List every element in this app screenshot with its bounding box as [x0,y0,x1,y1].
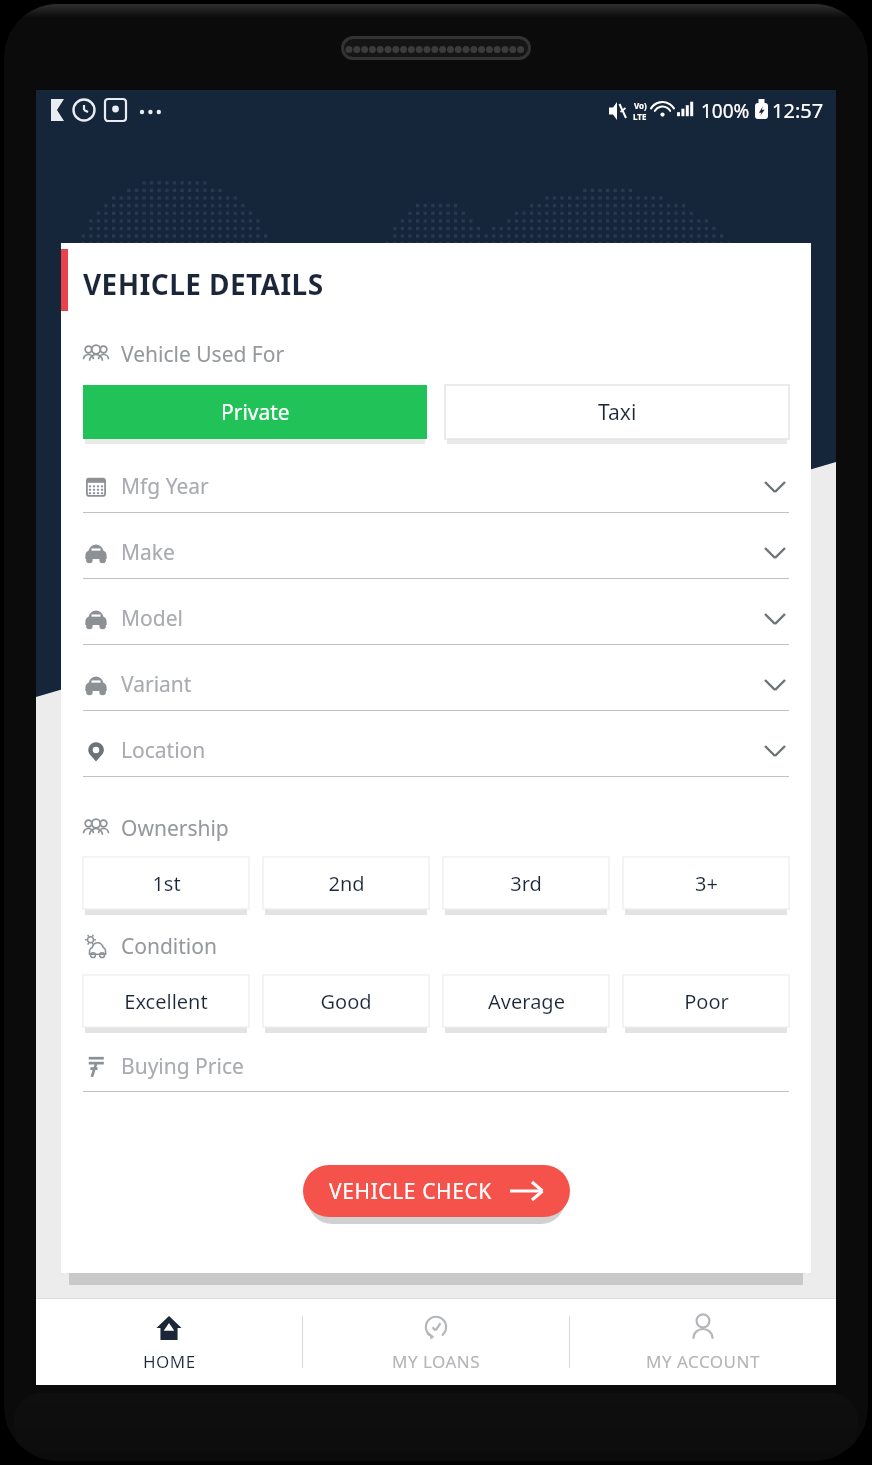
button[interactable]: Select Mfg Year [83,461,789,512]
staticText: Ownership [121,814,229,843]
button[interactable]: 2nd [263,857,429,909]
staticText: Model [121,604,183,633]
staticText: Make [121,538,175,567]
staticText: Buying Price [121,1052,244,1081]
button[interactable]: Select Variant [83,659,789,710]
button[interactable]: Good [263,975,429,1027]
button[interactable]: Poor [623,975,789,1027]
staticText: MY ACCOUNT [646,1350,760,1373]
button[interactable]: Select Location [83,725,789,776]
staticText: 3+ [695,870,718,897]
staticText: VEHICLE CHECK [329,1177,492,1206]
button[interactable]: 3+ [623,857,789,909]
button[interactable]: VEHICLE CHECK [303,1165,570,1217]
staticText: 100% [701,98,750,124]
button[interactable]: HOME [36,1299,302,1385]
staticText: Vehicle Used For [121,340,285,369]
button[interactable]: Taxi [445,385,789,439]
staticText: 1st [152,870,181,897]
staticText: Vo) [634,100,647,111]
staticText: Condition [121,932,217,961]
staticText: 12:57 [772,97,824,124]
staticText: HOME [143,1350,196,1373]
button[interactable]: Excellent [83,975,249,1027]
staticText: Variant [121,670,192,699]
button[interactable]: 1st [83,857,249,909]
button[interactable]: MY ACCOUNT [570,1299,836,1385]
staticText: Good [320,988,372,1015]
staticText: Average [488,988,565,1015]
button[interactable]: Select Make [83,527,789,578]
staticText: Poor [684,988,729,1015]
button[interactable]: MY LOANS [303,1299,569,1385]
button[interactable]: Private [83,385,427,439]
staticText: MY LOANS [392,1350,481,1373]
staticText: Private [221,398,290,427]
button[interactable]: 3rd [443,857,609,909]
staticText: Location [121,736,206,765]
button[interactable]: Select Model [83,593,789,644]
staticText: Excellent [124,988,208,1015]
staticText: Mfg Year [121,472,209,501]
staticText: 3rd [510,870,542,897]
button[interactable]: Buying Price [83,1041,789,1091]
staticText: 2nd [328,870,365,897]
staticText: Taxi [598,398,637,427]
staticText: LTE [633,111,647,122]
staticText: VEHICLE DETAILS [83,265,324,303]
button[interactable]: Average [443,975,609,1027]
